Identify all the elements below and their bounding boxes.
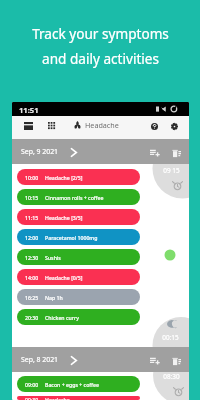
staticText: 14:00: [25, 274, 39, 281]
staticText: 11:15: [25, 214, 39, 221]
button[interactable]: Settings: [166, 118, 182, 134]
staticText: 09:30: [25, 396, 39, 400]
staticText: 12:00: [25, 234, 39, 241]
staticText: Cinnamon rolls + coffee: [45, 194, 104, 201]
staticText: 09:00: [25, 381, 39, 388]
button[interactable]: 20:30: [17, 309, 140, 325]
button[interactable]: 14:00: [17, 269, 140, 285]
staticText: Sep, 9 2021: [21, 147, 59, 156]
button[interactable]: Add entry: [148, 354, 162, 368]
button[interactable]: Agenda view: [20, 118, 36, 134]
button[interactable]: Next day: [68, 355, 79, 366]
button[interactable]: 11:15: [17, 209, 140, 225]
staticText: 16:25: [25, 294, 39, 301]
button[interactable]: Help: [146, 118, 162, 134]
button[interactable]: Delete: [169, 146, 183, 160]
button[interactable]: Grid view: [44, 118, 60, 134]
staticText: 12:30: [25, 254, 39, 261]
button[interactable]: 16:25: [17, 289, 140, 305]
button[interactable]: 09:00: [17, 376, 140, 392]
staticText: Headache [3/5]: [45, 214, 83, 221]
button[interactable]: 10:15: [17, 189, 140, 205]
staticText: Paracetamol 1000mg: [45, 234, 98, 241]
staticText: Nap 1h: [45, 294, 63, 301]
button[interactable]: Delete: [169, 354, 183, 368]
button[interactable]: 09:30: [17, 396, 140, 400]
staticText: Bacon + eggs + coffee: [45, 381, 99, 388]
staticText: 11:51: [19, 105, 39, 115]
button[interactable]: Next day: [68, 147, 79, 158]
staticText: 10:00: [25, 174, 39, 181]
button[interactable]: 12:00: [17, 229, 140, 245]
staticText: Track your symptoms: [32, 24, 169, 43]
staticText: Headache: [45, 396, 70, 400]
staticText: 08:30: [163, 372, 180, 381]
staticText: Headache [2/5]: [45, 174, 83, 181]
staticText: and daily activities: [42, 49, 159, 68]
staticText: Sushis: [45, 254, 61, 261]
button[interactable]: 12:30: [17, 249, 140, 265]
staticText: 09 15: [163, 166, 180, 175]
button[interactable]: Add entry: [148, 146, 162, 160]
staticText: Headache: [85, 120, 119, 130]
staticText: 20:30: [25, 314, 39, 321]
staticText: Sep, 8 2021: [21, 355, 59, 364]
staticText: Headache [0/5]: [45, 274, 83, 281]
staticText: Chicken curry: [45, 314, 79, 321]
button[interactable]: 10:00: [17, 169, 140, 185]
staticText: 00:15: [162, 333, 179, 342]
staticText: 10:15: [25, 194, 39, 201]
